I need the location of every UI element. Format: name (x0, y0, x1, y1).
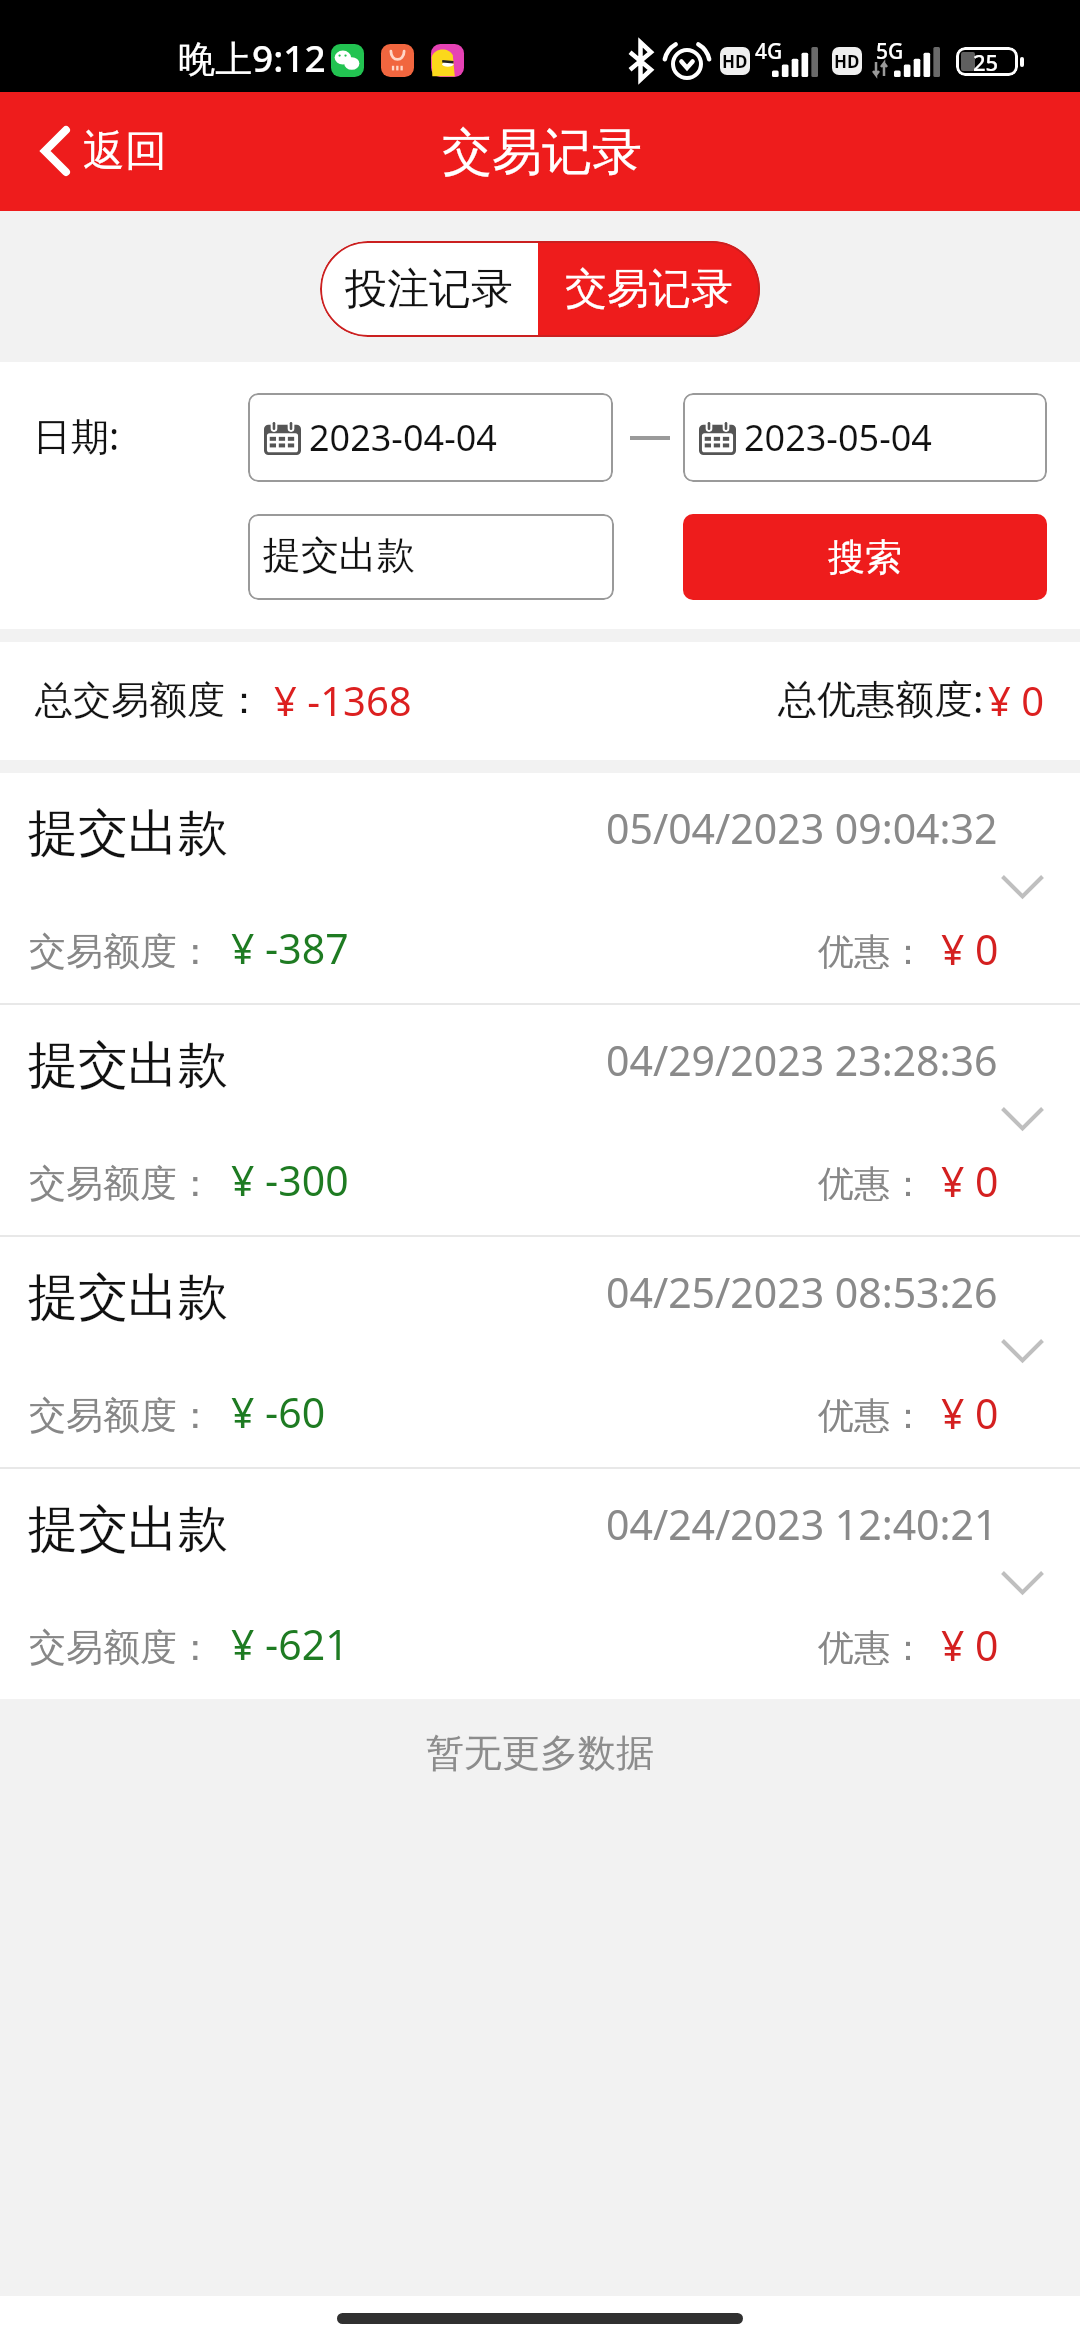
staticText: ¥ -300 (231, 1152, 349, 1208)
staticText: 优惠： (818, 1161, 926, 1206)
staticText: ¥ 0 (941, 1385, 999, 1441)
staticText: 优惠： (818, 1393, 926, 1438)
staticText: ¥ 0 (941, 921, 999, 977)
staticText: 提交出款 (28, 1266, 228, 1329)
staticText: 投注记录 (345, 263, 513, 316)
staticText: HD (722, 50, 748, 73)
staticText: ¥ 0 (941, 1617, 999, 1673)
staticText: 4G (755, 37, 783, 66)
staticText: 晚上9:12 (178, 32, 326, 83)
staticText: HD (834, 50, 860, 73)
staticText: 5G (876, 37, 904, 66)
button[interactable]: 提交出款 (248, 514, 614, 600)
staticText: 2023-05-04 (744, 413, 932, 462)
staticText: 日期: (33, 409, 120, 461)
staticText: ¥ 0 (988, 673, 1045, 727)
button[interactable]: 提交出款 (0, 773, 1080, 1003)
staticText: 总优惠额度: (778, 671, 984, 724)
button[interactable]: 提交出款 (0, 1237, 1080, 1467)
staticText: 优惠： (818, 929, 926, 974)
staticText: 交易额度： (29, 1392, 214, 1439)
button[interactable]: 投注记录 (320, 241, 538, 337)
staticText: ¥ -1368 (274, 673, 412, 727)
button[interactable]: 提交出款 (0, 1005, 1080, 1235)
staticText: 提交出款 (28, 802, 228, 865)
button[interactable]: 返回 (0, 92, 1080, 211)
staticText: 提交出款 (263, 531, 415, 579)
button[interactable]: 交易记录 (538, 241, 760, 337)
staticText: 交易额度： (29, 1160, 214, 1207)
staticText: ¥ 0 (941, 1153, 999, 1209)
staticText: 搜索 (828, 534, 902, 581)
staticText: 返回 (83, 125, 167, 178)
staticText: ¥ -387 (231, 920, 349, 976)
button[interactable]: 2023-04-04 (248, 393, 613, 482)
staticText: 提交出款 (28, 1034, 228, 1097)
staticText: 交易额度： (29, 928, 214, 975)
button[interactable]: 2023-05-04 (683, 393, 1047, 482)
staticText: 04/29/2023 23:28:36 (606, 1032, 998, 1088)
staticText: 提交出款 (28, 1498, 228, 1561)
staticText: 交易记录 (565, 263, 733, 316)
staticText: 交易记录 (442, 121, 642, 184)
button[interactable]: 搜索 (683, 514, 1047, 600)
staticText: 05/04/2023 09:04:32 (606, 800, 998, 856)
staticText: 04/25/2023 08:53:26 (606, 1264, 998, 1320)
staticText: 总交易额度： (35, 676, 263, 724)
staticText: 25 (973, 47, 999, 76)
staticText: 04/24/2023 12:40:21 (606, 1496, 998, 1552)
staticText: ¥ -60 (231, 1384, 326, 1440)
staticText: ¥ -621 (231, 1616, 349, 1672)
staticText: 暂无更多数据 (426, 1729, 654, 1777)
staticText: 2023-04-04 (309, 413, 497, 462)
staticText: 优惠： (818, 1625, 926, 1670)
staticText: 交易额度： (29, 1624, 214, 1671)
button[interactable]: 提交出款 (0, 1469, 1080, 1699)
